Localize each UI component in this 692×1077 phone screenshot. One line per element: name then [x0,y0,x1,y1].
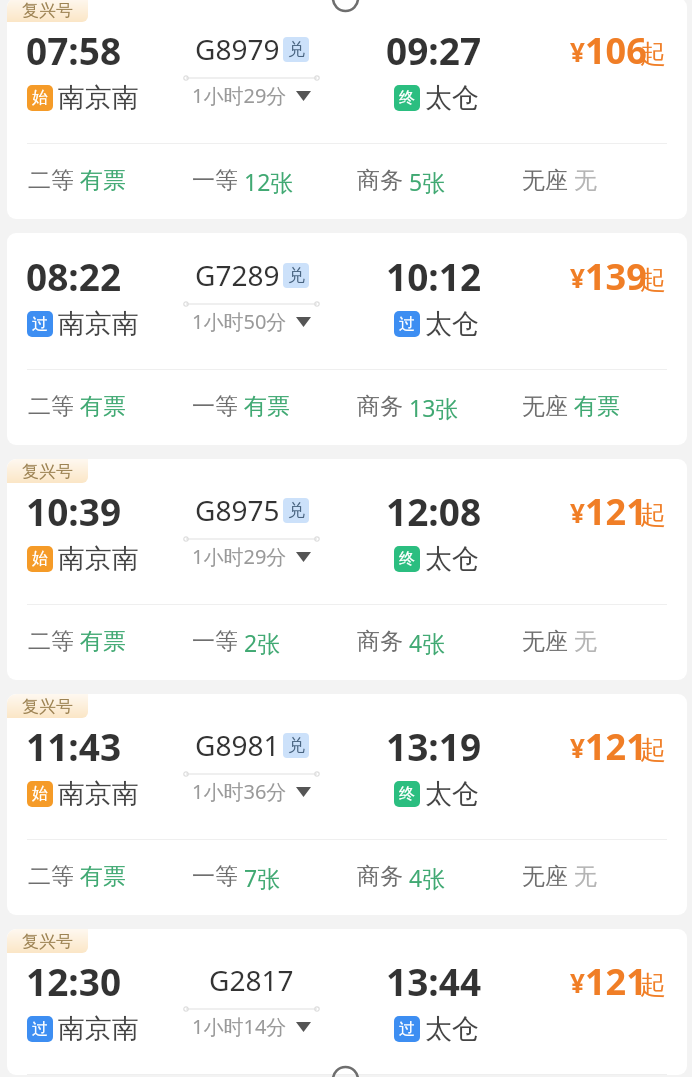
staticText: 起 [640,38,666,71]
staticText: 复兴号 [22,696,73,717]
staticText: 无座 [522,627,568,656]
staticText: 4张 [409,862,446,893]
staticText: G7289 [195,256,280,294]
staticText: 4张 [409,627,446,658]
staticText: 106 [585,26,647,75]
staticText: 1小时50分 [192,308,287,335]
staticText: 始 [32,88,48,108]
staticText: 南京南 [58,81,139,115]
button[interactable]: 复兴号 [7,929,687,1075]
staticText: 10:12 [386,251,482,301]
staticText: 太仓 [425,1012,479,1046]
staticText: 1小时29分 [192,543,287,570]
staticText: 二等 [28,166,74,195]
staticText: 有票 [80,862,126,891]
staticText: 有票 [244,392,290,421]
staticText: 121 [585,722,647,771]
staticText: 1小时29分 [192,82,287,109]
staticText: 一等 [192,392,238,421]
staticText: 太仓 [425,307,479,341]
staticText: 过 [399,314,415,334]
staticText: 起 [640,969,666,1002]
staticText: 南京南 [58,542,139,576]
staticText: 2张 [244,627,281,658]
staticText: ¥ [570,495,585,530]
staticText: ¥ [570,260,585,295]
staticText: G8979 [195,30,280,68]
staticText: 始 [32,784,48,804]
staticText: 有票 [80,392,126,421]
staticText: 商务 [357,166,403,195]
staticText: 无座 [522,166,568,195]
staticText: 13:44 [386,956,482,1006]
staticText: 12:08 [386,486,482,536]
staticText: 11:43 [26,721,122,771]
staticText: 有票 [80,166,126,195]
staticText: 复兴号 [22,0,73,21]
staticText: 12张 [244,166,294,197]
staticText: 12:30 [26,956,122,1006]
staticText: 无座 [522,392,568,421]
staticText: 二等 [28,392,74,421]
staticText: 121 [585,487,647,536]
staticText: 太仓 [425,777,479,811]
staticText: 终 [399,784,415,804]
staticText: 07:58 [26,25,122,75]
staticText: 无 [574,862,597,891]
staticText: 兑 [288,265,305,286]
staticText: 一等 [192,627,238,656]
staticText: 7张 [244,862,281,893]
staticText: 兑 [288,500,305,521]
staticText: 二等 [28,627,74,656]
staticText: 13:19 [386,721,482,771]
staticText: 起 [640,499,666,532]
staticText: 过 [32,314,48,334]
button[interactable]: 复兴号 [7,459,687,680]
staticText: 起 [640,264,666,297]
staticText: 复兴号 [22,461,73,482]
staticText: 始 [32,549,48,569]
staticText: 商务 [357,627,403,656]
staticText: G2817 [209,961,294,999]
staticText: 1小时36分 [192,778,287,805]
staticText: 过 [399,1019,415,1039]
staticText: G8981 [195,726,280,764]
staticText: G8975 [195,491,280,529]
staticText: 121 [585,957,647,1006]
staticText: 过 [32,1019,48,1039]
button[interactable]: 复兴号 [7,0,687,219]
staticText: ¥ [570,34,585,69]
staticText: 南京南 [58,777,139,811]
button[interactable]: 复兴号 [7,694,687,915]
button[interactable]: 08:22 [7,233,687,445]
staticText: 一等 [192,862,238,891]
staticText: 有票 [80,627,126,656]
staticText: 无 [574,166,597,195]
staticText: 终 [399,88,415,108]
staticText: 1小时14分 [192,1013,287,1040]
staticText: 09:27 [386,25,482,75]
staticText: 复兴号 [22,931,73,952]
staticText: 起 [640,734,666,767]
staticText: 无 [574,627,597,656]
staticText: ¥ [570,730,585,765]
staticText: 太仓 [425,81,479,115]
staticText: 无座 [522,862,568,891]
staticText: 10:39 [26,486,122,536]
staticText: 终 [399,549,415,569]
staticText: 一等 [192,166,238,195]
staticText: 5张 [409,166,446,197]
staticText: 南京南 [58,1012,139,1046]
staticText: 13张 [409,392,459,423]
staticText: 太仓 [425,542,479,576]
staticText: 商务 [357,392,403,421]
staticText: 08:22 [26,251,122,301]
staticText: 二等 [28,862,74,891]
staticText: 南京南 [58,307,139,341]
staticText: 兑 [288,39,305,60]
staticText: 商务 [357,862,403,891]
staticText: 139 [585,252,647,301]
staticText: 兑 [288,735,305,756]
staticText: 有票 [574,392,620,421]
staticText: ¥ [570,965,585,1000]
